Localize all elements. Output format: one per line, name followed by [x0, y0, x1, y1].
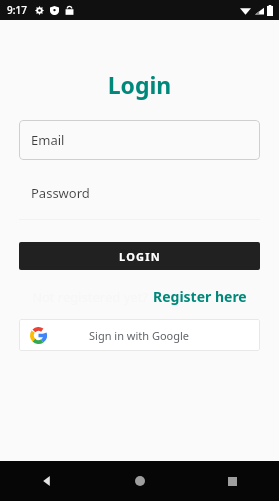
- staticText: Password: [31, 184, 90, 202]
- button[interactable]: Recent apps: [186, 461, 279, 501]
- button[interactable]: LOGIN: [19, 242, 260, 270]
- button[interactable]: Back: [0, 461, 93, 501]
- staticText: LOGIN: [119, 249, 161, 264]
- button[interactable]: Sign in with Google: [19, 319, 260, 351]
- staticText: 9:17: [7, 3, 27, 17]
- staticText: Sign in with Google: [89, 328, 190, 343]
- button[interactable]: Register here: [153, 287, 247, 306]
- button[interactable]: Password: [19, 180, 260, 220]
- staticText: Email: [31, 131, 65, 149]
- button[interactable]: Email: [19, 120, 260, 160]
- staticText: Login: [0, 69, 279, 100]
- staticText: Register here: [153, 287, 247, 306]
- button[interactable]: Home: [93, 461, 186, 501]
